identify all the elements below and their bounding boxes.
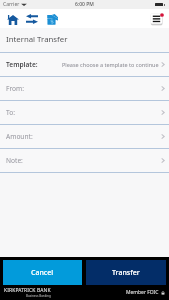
staticText: Template: bbox=[6, 60, 38, 69]
button[interactable]: Transfers bbox=[26, 14, 38, 24]
button[interactable]: To: bbox=[0, 101, 169, 124]
button[interactable]: From: bbox=[0, 77, 169, 100]
staticText: Carrier bbox=[3, 1, 20, 8]
staticText: Member FDIC bbox=[126, 289, 159, 296]
staticText: 6:00 PM bbox=[75, 1, 94, 8]
button[interactable]: Template: bbox=[0, 53, 169, 76]
staticText: To: bbox=[6, 108, 15, 117]
staticText: Transfer bbox=[112, 268, 140, 278]
staticText: Cancel bbox=[31, 268, 54, 278]
staticText: Business Banking bbox=[26, 294, 51, 298]
staticText: Internal Transfer bbox=[6, 34, 68, 45]
staticText: From: bbox=[6, 84, 24, 93]
staticText: Please choose a template to continue bbox=[62, 61, 159, 68]
button[interactable]: Menu bbox=[150, 12, 165, 27]
button[interactable]: Home bbox=[7, 15, 19, 25]
button[interactable]: Amount: bbox=[0, 125, 169, 148]
button[interactable]: Cancel bbox=[3, 260, 82, 285]
button[interactable]: Note: bbox=[0, 149, 169, 172]
staticText: Amount: bbox=[6, 132, 33, 141]
button[interactable]: Deposit bbox=[47, 14, 58, 25]
button[interactable]: Transfer bbox=[86, 260, 166, 285]
staticText: Note: bbox=[6, 156, 23, 165]
staticText: KIRKPATRICK BANK bbox=[4, 287, 51, 294]
